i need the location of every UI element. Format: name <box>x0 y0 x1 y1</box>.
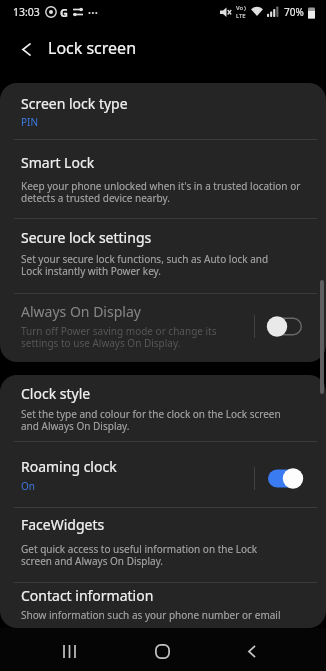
button[interactable]: FaceWidgets <box>0 508 326 582</box>
button[interactable]: Screen lock type <box>0 83 326 139</box>
staticText: Screen lock type <box>21 94 128 113</box>
button[interactable]: Roaming clock <box>0 442 326 507</box>
staticText: PIN <box>21 115 39 129</box>
staticText: LTE <box>236 12 246 20</box>
button[interactable]: Clock style <box>0 375 326 441</box>
staticText: 70% <box>284 5 304 19</box>
staticText: Smart Lock <box>21 153 95 172</box>
button[interactable] <box>10 33 42 65</box>
staticText: Set the type and colour for the clock on… <box>21 407 281 433</box>
staticText: Vo ) <box>236 4 246 12</box>
staticText: On <box>21 479 35 493</box>
staticText: Keep your phone unlocked when it's in a … <box>21 179 301 205</box>
staticText: Lock screen <box>48 37 137 59</box>
staticText: Roaming clock <box>21 457 117 476</box>
staticText: Get quick access to useful information o… <box>21 542 258 568</box>
button[interactable] <box>147 638 177 664</box>
staticText: Secure lock settings <box>21 228 152 247</box>
staticText: Show information such as your phone numb… <box>21 608 281 622</box>
staticText: Contact information <box>21 586 154 605</box>
staticText: Turn off Power saving mode or change its… <box>21 324 217 350</box>
button[interactable]: Secure lock settings <box>0 219 326 293</box>
staticText: G <box>60 5 68 20</box>
button[interactable]: Smart Lock <box>0 140 326 218</box>
staticText: Clock style <box>21 384 91 403</box>
staticText: Set your secure lock functions, such as … <box>21 252 269 278</box>
button[interactable]: Contact information <box>0 583 326 628</box>
button[interactable]: Always On Display <box>0 294 326 362</box>
button[interactable] <box>237 638 267 664</box>
button[interactable] <box>55 638 85 664</box>
staticText: 13:03 <box>13 5 40 19</box>
button[interactable] <box>268 468 302 489</box>
button[interactable] <box>268 316 302 337</box>
staticText: Always On Display <box>21 302 141 321</box>
staticText: FaceWidgets <box>21 515 105 534</box>
